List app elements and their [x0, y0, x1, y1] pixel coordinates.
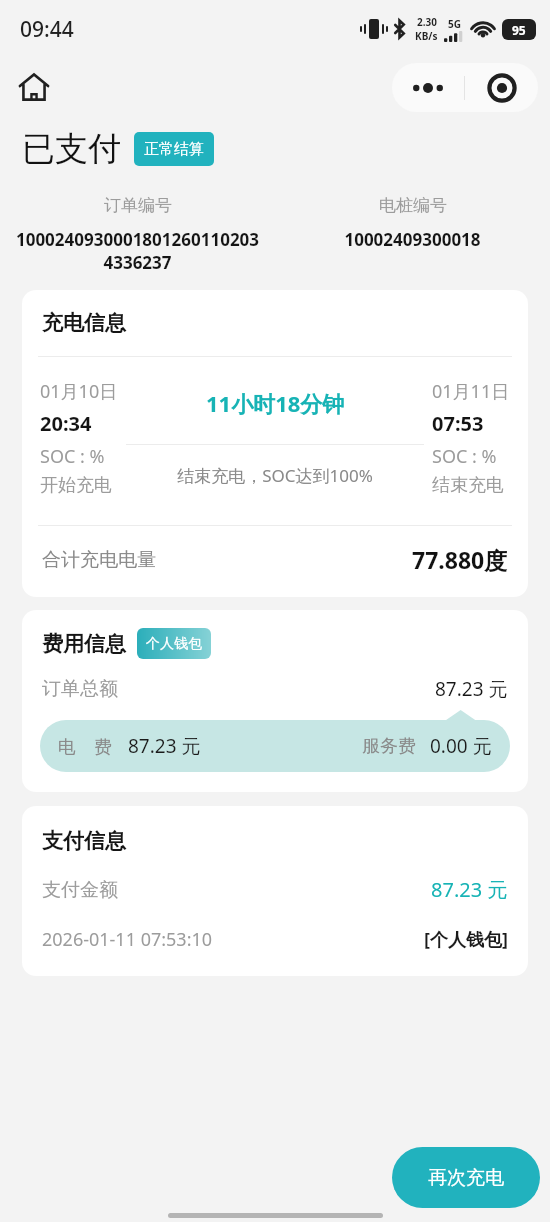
- staticText: 订单总额: [42, 677, 118, 701]
- staticText: 已支付: [22, 128, 121, 170]
- staticText: 0.00 元: [430, 733, 492, 759]
- staticText: SOC : %: [432, 444, 497, 469]
- staticText: 费用信息: [42, 631, 126, 657]
- staticText: 开始充电: [40, 474, 112, 497]
- button[interactable]: Close: [465, 63, 538, 112]
- staticText: 95: [512, 22, 526, 38]
- staticText: 5G: [448, 17, 461, 31]
- staticText: 87.23 元: [128, 733, 201, 759]
- staticText: 个人钱包: [146, 635, 202, 653]
- staticText: 20:34: [40, 410, 92, 437]
- staticText: 2026-01-11 07:53:10: [42, 927, 213, 952]
- staticText: 07:53: [432, 410, 484, 437]
- staticText: 正常结算: [144, 140, 204, 159]
- staticText: [个人钱包]: [424, 927, 508, 952]
- staticText: 01月11日: [432, 379, 510, 404]
- staticText: 10002409300018012601102034336237: [12, 228, 263, 274]
- staticText: 服务费: [362, 735, 416, 758]
- staticText: 再次充电: [428, 1166, 504, 1190]
- staticText: 87.23 元: [435, 676, 508, 702]
- staticText: 电桩编号: [379, 195, 447, 216]
- button[interactable]: Home: [12, 65, 56, 109]
- staticText: 结束充电: [432, 474, 504, 497]
- staticText: 01月10日: [40, 379, 118, 404]
- staticText: 订单编号: [104, 195, 172, 216]
- staticText: 2.30: [417, 15, 437, 29]
- staticText: 合计充电电量: [42, 548, 156, 572]
- button[interactable]: 再次充电: [392, 1147, 540, 1208]
- staticText: 77.880度: [412, 544, 508, 575]
- staticText: 09:44: [20, 15, 74, 44]
- staticText: SOC : %: [40, 444, 105, 469]
- staticText: 结束充电，SOC达到100%: [177, 464, 373, 487]
- staticText: 87.23 元: [431, 876, 508, 903]
- staticText: 10002409300018: [344, 228, 481, 251]
- staticText: 电 费: [58, 734, 112, 759]
- staticText: 支付金额: [42, 878, 118, 902]
- button[interactable]: More options: [392, 63, 464, 112]
- staticText: 11小时18分钟: [206, 388, 345, 418]
- staticText: 充电信息: [42, 310, 126, 336]
- staticText: 支付信息: [42, 828, 126, 854]
- staticText: KB/s: [415, 29, 438, 43]
